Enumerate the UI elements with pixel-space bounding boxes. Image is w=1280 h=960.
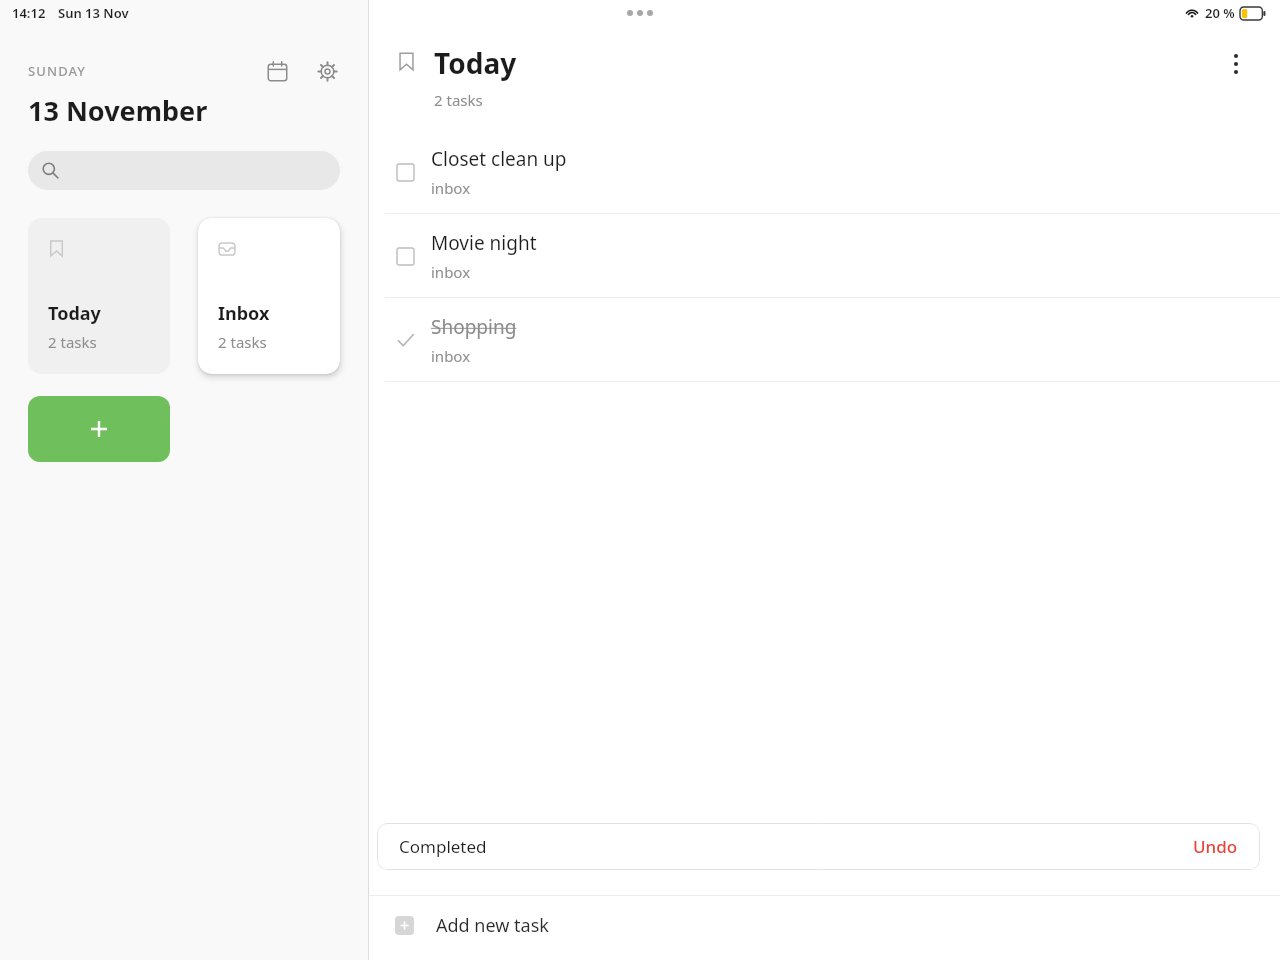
staticText: Sun 13 Nov [58, 4, 129, 22]
staticText: Completed [399, 835, 487, 858]
staticText: Today [48, 301, 101, 326]
button[interactable]: Settings [310, 54, 344, 88]
button[interactable]: Mark complete [385, 152, 425, 192]
staticText: Movie night [431, 230, 537, 256]
staticText: 2 tasks [48, 332, 97, 352]
button[interactable]: Calendar [260, 54, 294, 88]
button[interactable]: Add new task [369, 896, 1280, 954]
button[interactable]: Completed [369, 298, 1280, 381]
button[interactable]: Completed [385, 320, 425, 360]
staticText: inbox [431, 262, 471, 282]
button[interactable]: Undo [1185, 829, 1246, 864]
staticText: inbox [431, 178, 471, 198]
staticText: Add new task [436, 913, 549, 938]
staticText: SUNDAY [28, 62, 87, 80]
staticText: 2 tasks [218, 332, 267, 352]
staticText: 14:12 [12, 4, 46, 22]
staticText: Closet clean up [431, 146, 567, 172]
button[interactable]: Completed [377, 823, 1260, 870]
button[interactable]: Add list [28, 396, 170, 462]
button[interactable]: Today [28, 218, 170, 374]
button[interactable]: Search [28, 151, 340, 190]
button[interactable]: More options [1216, 44, 1256, 84]
staticText: 2 tasks [434, 90, 483, 110]
staticText: Undo [1193, 835, 1238, 858]
button[interactable]: Mark complete [369, 214, 1280, 297]
staticText: Today [434, 44, 517, 82]
button[interactable]: Mark complete [369, 130, 1280, 213]
staticText: Shopping [431, 314, 517, 340]
staticText: 13 November [28, 92, 208, 129]
button[interactable]: Mark complete [385, 236, 425, 276]
button[interactable]: Inbox [198, 218, 340, 374]
staticText: 20 % [1205, 4, 1235, 22]
staticText: Inbox [218, 301, 270, 326]
staticText: inbox [431, 346, 471, 366]
